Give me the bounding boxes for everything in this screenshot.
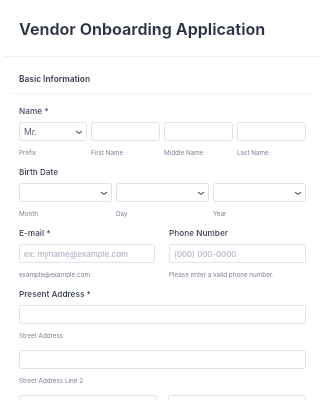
staticText: (000) 000-0000	[174, 249, 237, 259]
button[interactable]: (000) 000-0000	[169, 244, 306, 263]
staticText: Month	[19, 210, 38, 218]
button[interactable]	[213, 183, 306, 202]
staticText: Vendor Onboarding Application	[19, 19, 266, 38]
staticText: Street Address Line 2	[19, 377, 84, 385]
staticText: Middle Name	[164, 149, 204, 157]
staticText: Mr.	[24, 127, 37, 137]
button[interactable]	[19, 305, 306, 324]
button[interactable]	[19, 395, 157, 400]
staticText: Year	[213, 210, 227, 218]
staticText: Name *	[19, 106, 49, 116]
staticText: example@example.com	[19, 271, 90, 279]
button[interactable]	[91, 122, 160, 141]
button[interactable]	[237, 122, 306, 141]
staticText: Present Address *	[19, 289, 91, 299]
button[interactable]	[19, 350, 306, 369]
staticText: Last Name	[237, 149, 269, 157]
staticText: Phone Number	[169, 228, 228, 238]
staticText: Day	[116, 210, 128, 218]
staticText: Prefix	[19, 149, 37, 157]
staticText: Street Address	[19, 332, 64, 340]
staticText: Basic Information	[19, 74, 91, 84]
button[interactable]	[168, 395, 306, 400]
button[interactable]: Mr.	[19, 122, 87, 141]
button[interactable]	[19, 183, 112, 202]
staticText: First Name	[91, 149, 124, 157]
button[interactable]	[164, 122, 233, 141]
button[interactable]	[116, 183, 209, 202]
staticText: ex: myname@example.com	[24, 249, 128, 259]
staticText: Birth Date	[19, 167, 59, 177]
button[interactable]: ex: myname@example.com	[19, 244, 155, 263]
staticText: Please enter a valid phone number.	[169, 271, 274, 279]
staticText: E-mail *	[19, 228, 51, 238]
